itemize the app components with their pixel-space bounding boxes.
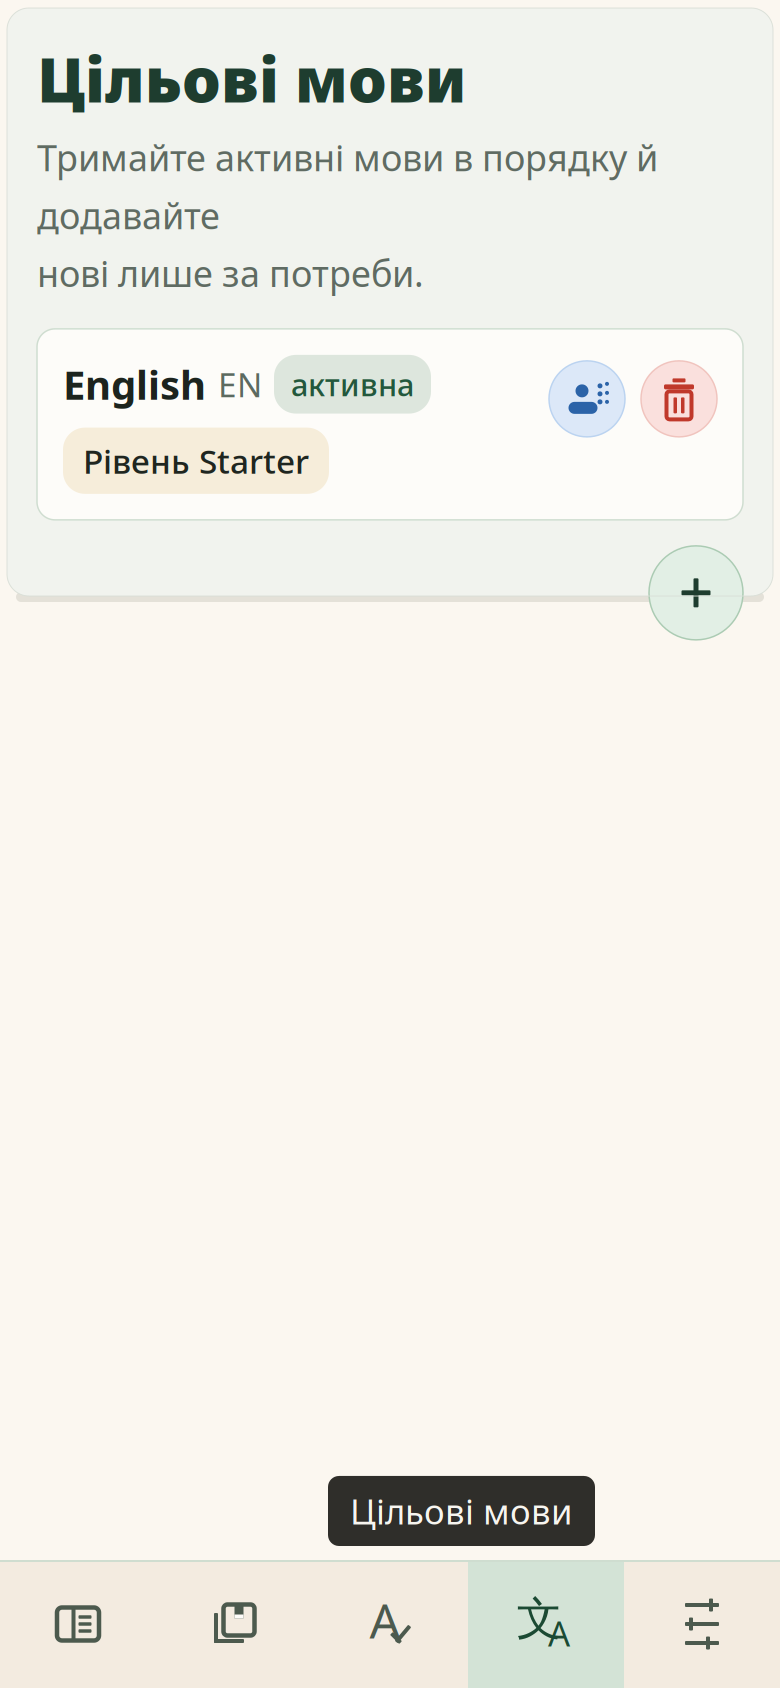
staticText: Тримайте активні мови в порядку й додава… — [37, 133, 658, 297]
button[interactable]: Додати мову — [649, 546, 743, 640]
staticText: EN — [218, 362, 262, 406]
staticText: Рівень Starter — [83, 439, 309, 483]
staticText: A — [369, 1588, 400, 1652]
button[interactable]: Читання — [0, 1560, 156, 1688]
staticText: Цільові мови — [350, 1488, 573, 1534]
button[interactable]: Бібліотека — [156, 1560, 312, 1688]
button[interactable]: Видалити мову — [641, 361, 717, 437]
button[interactable]: Перевірка — [312, 1560, 468, 1688]
button[interactable]: Налаштування — [624, 1560, 780, 1688]
staticText: 文 — [516, 1591, 561, 1647]
button[interactable]: Озвучити — [549, 361, 625, 437]
button[interactable]: Цільові мови — [468, 1560, 624, 1688]
staticText: Цільові мови — [37, 38, 466, 119]
staticText: English — [63, 358, 206, 411]
staticText: A — [548, 1610, 570, 1656]
staticText: активна — [291, 364, 414, 405]
